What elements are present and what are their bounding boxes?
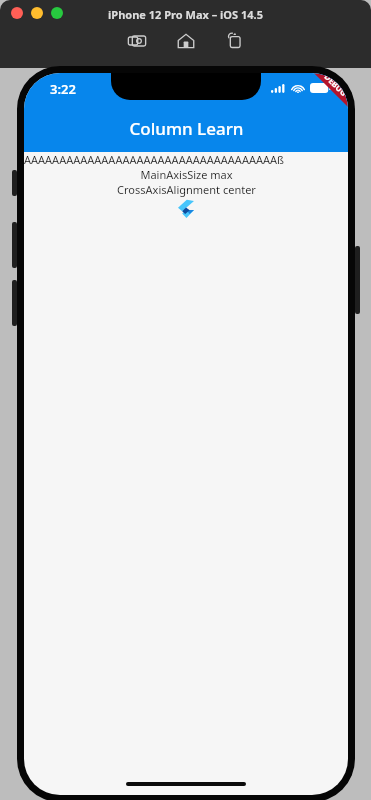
staticText: DEBUG <box>322 73 348 98</box>
button[interactable]: Home <box>174 29 198 53</box>
button[interactable]: Screenshot <box>125 29 149 53</box>
staticText: CrossAxisAlignment center <box>117 182 256 197</box>
staticText: AAAAAAAAAAAAAAAAAAAAAAAAAAAAAAAAAAAAß <box>24 152 348 167</box>
button[interactable]: Column Learn <box>129 117 244 140</box>
button[interactable]: Minimize <box>31 7 43 19</box>
staticText: MainAxisSize max <box>140 167 233 182</box>
button[interactable]: Rotate <box>223 29 247 53</box>
button[interactable]: Close <box>11 7 23 19</box>
button[interactable]: Zoom <box>51 7 63 19</box>
staticText: iPhone 12 Pro Max – iOS 14.5 <box>108 7 263 22</box>
staticText: 3:22 <box>50 80 76 98</box>
